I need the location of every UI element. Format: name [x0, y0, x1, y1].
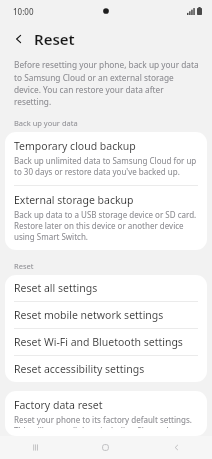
- button[interactable]: Temporary cloud backup: [5, 132, 207, 185]
- staticText: Factory data reset: [14, 398, 103, 412]
- staticText: Reset accessibility settings: [14, 362, 145, 376]
- staticText: Reset your phone to its factory default …: [14, 414, 199, 428]
- staticText: Back up unlimited data to Samsung Cloud …: [14, 155, 199, 177]
- staticText: Reset Wi-Fi and Bluetooth settings: [14, 335, 183, 349]
- button[interactable]: Back: [7, 27, 30, 50]
- staticText: Reset: [34, 29, 75, 49]
- button[interactable]: Factory data reset: [5, 391, 207, 436]
- staticText: Reset mobile network settings: [14, 308, 164, 322]
- staticText: External storage backup: [14, 193, 134, 207]
- staticText: 10:00: [13, 6, 34, 17]
- button[interactable]: Home: [70, 436, 141, 459]
- staticText: Back up your data: [14, 118, 212, 128]
- button[interactable]: External storage backup: [5, 186, 207, 250]
- button[interactable]: Reset Wi-Fi and Bluetooth settings: [5, 329, 207, 355]
- button[interactable]: Reset mobile network settings: [5, 302, 207, 328]
- button[interactable]: Recent apps: [0, 436, 70, 459]
- staticText: Before resetting your phone, back up you…: [14, 59, 201, 107]
- button[interactable]: Reset all settings: [5, 275, 207, 301]
- staticText: Back up data to a USB storage device or …: [14, 209, 199, 242]
- staticText: Temporary cloud backup: [14, 139, 136, 153]
- button[interactable]: Reset accessibility settings: [5, 356, 207, 382]
- staticText: Reset: [14, 261, 212, 271]
- staticText: Reset all settings: [14, 281, 98, 295]
